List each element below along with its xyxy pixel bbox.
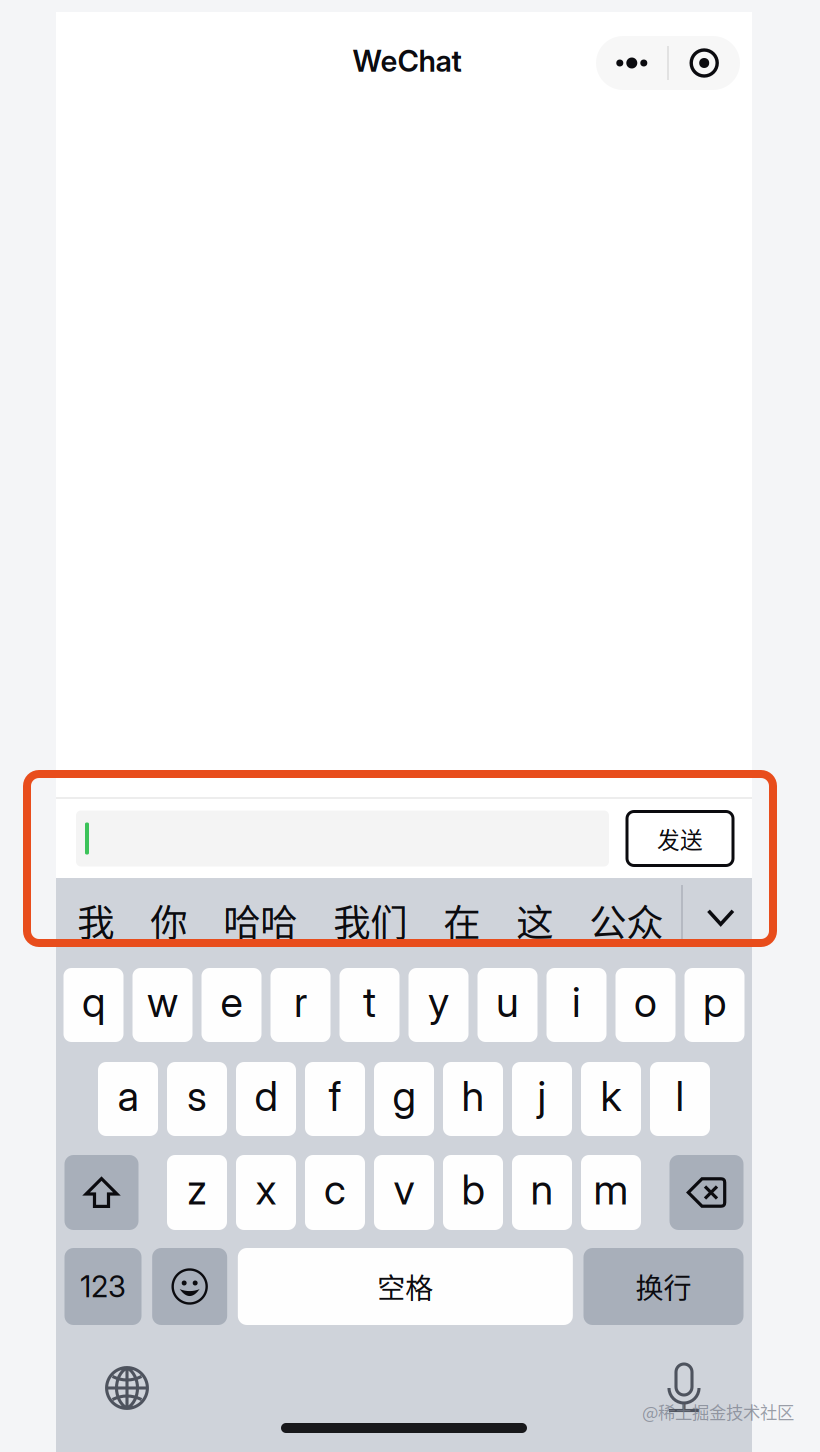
staticText: l — [675, 1071, 684, 1121]
button[interactable]: a — [98, 1062, 158, 1136]
staticText: k — [600, 1071, 621, 1121]
button[interactable]: f — [305, 1062, 365, 1136]
button[interactable]: 哈哈 — [205, 878, 315, 945]
staticText: n — [530, 1164, 553, 1214]
staticText: p — [703, 977, 726, 1027]
button[interactable]: n — [512, 1155, 572, 1230]
button[interactable]: 发送 — [627, 811, 733, 865]
button[interactable]: Switch keyboard — [90, 1358, 164, 1418]
button[interactable]: d — [236, 1062, 296, 1136]
button[interactable]: z — [167, 1155, 227, 1230]
staticText: f — [328, 1071, 341, 1121]
button[interactable]: Hide keyboard — [683, 878, 759, 945]
button[interactable]: o — [615, 968, 675, 1042]
staticText: t — [363, 977, 376, 1027]
staticText: 空格 — [377, 1266, 433, 1307]
staticText: w — [147, 977, 178, 1027]
staticText: a — [117, 1071, 138, 1121]
button[interactable]: j — [512, 1062, 572, 1136]
staticText: y — [428, 977, 449, 1027]
staticText: j — [537, 1071, 546, 1121]
staticText: 你 — [150, 893, 187, 948]
staticText: r — [294, 977, 307, 1027]
staticText: q — [82, 977, 105, 1027]
staticText: 我们 — [333, 893, 407, 948]
button[interactable]: u — [477, 968, 537, 1042]
staticText: e — [220, 977, 242, 1027]
button[interactable]: x — [236, 1155, 296, 1230]
button[interactable]: k — [581, 1062, 641, 1136]
button[interactable]: More — [596, 36, 667, 90]
staticText: c — [324, 1164, 346, 1214]
button[interactable]: 我们 — [315, 878, 425, 945]
staticText: WeChat — [352, 43, 461, 79]
staticText: h — [461, 1071, 484, 1121]
button[interactable]: Emoji — [152, 1248, 227, 1325]
staticText: 发送 — [657, 822, 703, 855]
button[interactable]: y — [408, 968, 468, 1042]
button[interactable]: 这 — [498, 878, 571, 945]
staticText: 123 — [80, 1269, 126, 1304]
staticText: 这 — [516, 893, 553, 948]
button[interactable]: w — [132, 968, 192, 1042]
button[interactable]: 换行 — [583, 1248, 743, 1325]
staticText: 在 — [443, 893, 480, 948]
button[interactable]: e — [201, 968, 261, 1042]
staticText: g — [392, 1071, 415, 1121]
staticText: v — [393, 1164, 414, 1214]
staticText: 公众 — [589, 893, 663, 948]
button[interactable]: i — [546, 968, 606, 1042]
button[interactable]: 在 — [425, 878, 498, 945]
staticText: 我 — [77, 893, 114, 948]
staticText: b — [461, 1164, 484, 1214]
staticText: i — [572, 977, 581, 1027]
button[interactable]: Close mini program — [669, 36, 740, 90]
staticText: s — [187, 1071, 207, 1121]
staticText: 换行 — [635, 1266, 691, 1307]
button[interactable]: c — [305, 1155, 365, 1230]
button[interactable]: 你 — [132, 878, 205, 945]
staticText: @稀土掘金技术社区 — [642, 1399, 794, 1424]
button[interactable]: 123 — [64, 1248, 141, 1325]
button[interactable]: q — [63, 968, 123, 1042]
staticText: o — [634, 977, 657, 1027]
button[interactable]: r — [270, 968, 330, 1042]
button[interactable]: m — [581, 1155, 641, 1230]
staticText: 哈哈 — [223, 893, 297, 948]
staticText: u — [496, 977, 519, 1027]
button[interactable]: l — [650, 1062, 710, 1136]
button[interactable]: Delete — [669, 1155, 743, 1230]
staticText: d — [254, 1071, 277, 1121]
button[interactable]: Shift — [64, 1155, 138, 1230]
button[interactable]: h — [443, 1062, 503, 1136]
button[interactable]: v — [374, 1155, 434, 1230]
button[interactable]: g — [374, 1062, 434, 1136]
button[interactable]: b — [443, 1155, 503, 1230]
button[interactable]: p — [684, 968, 744, 1042]
button[interactable]: s — [167, 1062, 227, 1136]
button[interactable]: Dictation — [647, 1358, 721, 1418]
staticText: z — [187, 1164, 207, 1214]
button[interactable]: t — [339, 968, 399, 1042]
button[interactable]: 空格 — [238, 1248, 573, 1325]
button[interactable]: 公众 — [571, 878, 681, 945]
staticText: m — [593, 1164, 628, 1214]
button[interactable]: 我 — [59, 878, 132, 945]
staticText: x — [255, 1164, 276, 1214]
